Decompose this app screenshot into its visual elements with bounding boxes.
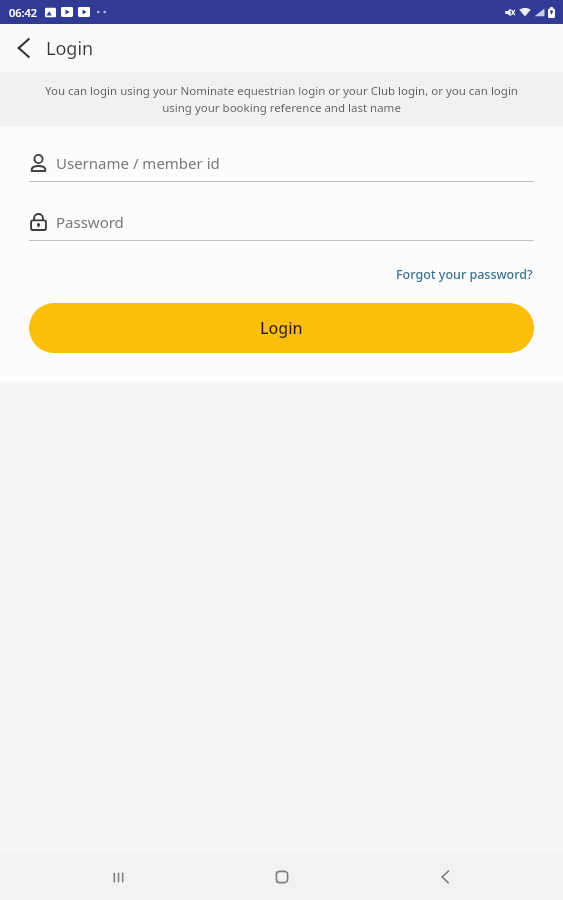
button[interactable]: Login bbox=[29, 303, 534, 353]
button[interactable]: Forgot your password? bbox=[394, 262, 535, 287]
button[interactable]: Recents bbox=[73, 854, 163, 900]
staticText: 06:42 bbox=[9, 5, 38, 20]
staticText: Forgot your password? bbox=[396, 266, 533, 283]
staticText: Login bbox=[260, 317, 303, 339]
staticText: Login bbox=[46, 36, 94, 61]
button[interactable]: Password bbox=[29, 207, 534, 241]
button[interactable]: Username / member id bbox=[29, 148, 534, 182]
staticText: Username / member id bbox=[56, 153, 220, 173]
button[interactable]: Home bbox=[237, 854, 327, 900]
staticText: Password bbox=[56, 212, 124, 232]
button[interactable]: Back bbox=[0, 24, 46, 72]
button[interactable]: Back bbox=[400, 854, 490, 900]
staticText: You can login using your Nominate equest… bbox=[30, 83, 533, 115]
